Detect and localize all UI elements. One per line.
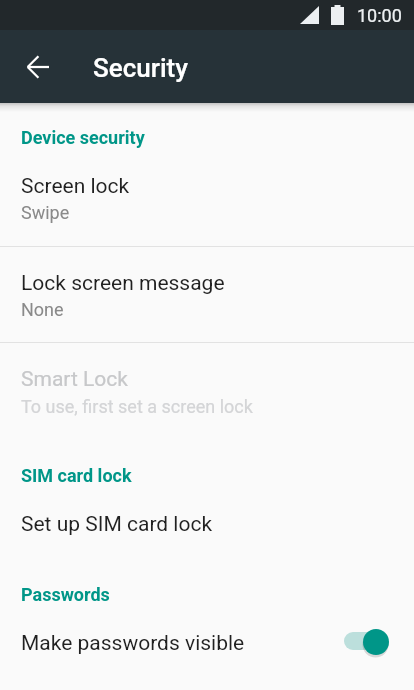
staticText: None	[21, 299, 64, 320]
staticText: To use, first set a screen lock	[21, 396, 253, 417]
staticText: 10:00	[357, 5, 402, 26]
other: Cellular signal	[300, 6, 319, 24]
staticText: SIM card lock	[21, 465, 132, 486]
staticText: Lock screen message	[21, 271, 225, 296]
staticText: Make passwords visible	[21, 631, 245, 656]
staticText: Device security	[21, 127, 145, 148]
button[interactable]: Smart Lock	[0, 343, 414, 438]
button[interactable]: Set up SIM card lock	[0, 496, 414, 566]
button[interactable]: Lock screen message	[0, 247, 414, 342]
staticText: Screen lock	[21, 174, 130, 199]
staticText: Smart Lock	[21, 367, 128, 392]
staticText: Security	[93, 53, 188, 83]
button[interactable]: Navigate up	[9, 39, 65, 95]
staticText: Swipe	[21, 202, 70, 223]
other: Battery full	[331, 5, 344, 25]
button[interactable]: Make passwords visible	[0, 618, 414, 666]
staticText: Set up SIM card lock	[21, 512, 213, 537]
button[interactable]: Screen lock	[0, 158, 414, 246]
staticText: Passwords	[21, 584, 110, 605]
